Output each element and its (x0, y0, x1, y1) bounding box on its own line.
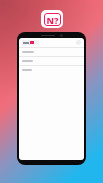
button[interactable]: Account (76, 40, 81, 45)
button[interactable] (19, 48, 84, 57)
staticText: N? (46, 14, 59, 26)
button[interactable] (19, 66, 84, 74)
button[interactable] (22, 40, 39, 45)
button[interactable]: App logo (41, 10, 63, 28)
button[interactable] (19, 57, 84, 66)
